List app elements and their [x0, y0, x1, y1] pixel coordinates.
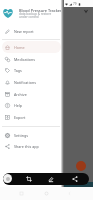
staticText: Blood Pressure Tracker: [19, 8, 62, 13]
staticText: Archive: [14, 92, 27, 97]
button[interactable]: Export: [2, 111, 61, 123]
button[interactable]: Home: [42, 189, 50, 197]
button[interactable]: Medications: [2, 53, 61, 65]
button[interactable]: Tags: [2, 64, 61, 76]
staticText: Share this app: [14, 144, 39, 149]
staticText: New report: [14, 29, 34, 34]
button[interactable]: Share: [72, 176, 78, 182]
button[interactable]: Recents: [17, 189, 25, 197]
button[interactable]: Markup: [48, 176, 54, 182]
button[interactable]: Crop: [26, 176, 32, 182]
button[interactable]: New report: [2, 25, 61, 37]
staticText: Notifications: [14, 80, 36, 85]
staticText: data backup & restore: [19, 12, 52, 16]
button[interactable]: Preview: [3, 174, 12, 183]
staticText: Tags: [14, 68, 22, 73]
button[interactable]: Home: [2, 41, 61, 53]
button[interactable]: Notifications: [2, 76, 61, 88]
button[interactable]: Archive: [2, 88, 61, 100]
staticText: Help: [14, 103, 23, 108]
button[interactable]: Share this app: [2, 140, 61, 152]
staticText: Home: [14, 45, 25, 50]
staticText: Export: [14, 115, 26, 120]
staticText: Settings: [14, 133, 29, 138]
button[interactable]: Settings: [2, 129, 61, 141]
button[interactable]: Help: [2, 99, 61, 111]
staticText: Medications: [14, 57, 36, 62]
staticText: 79: [73, 2, 77, 6]
staticText: under control: [19, 15, 39, 19]
